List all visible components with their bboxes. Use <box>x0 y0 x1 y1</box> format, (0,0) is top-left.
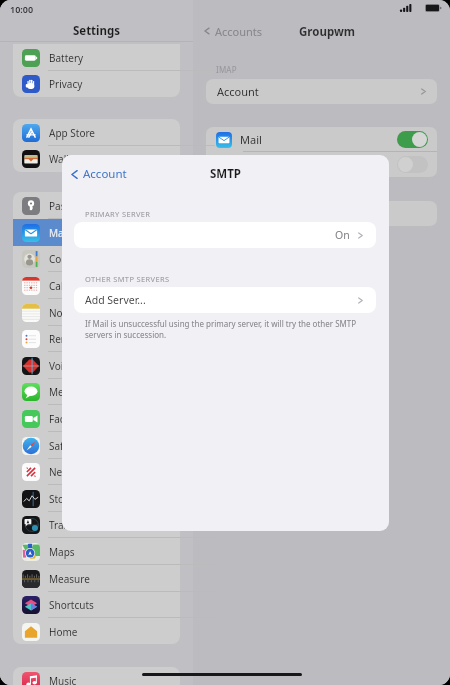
button[interactable]: Voice Memos <box>13 352 180 379</box>
staticText: Groupwm <box>299 24 355 40</box>
button[interactable]: Wallet <box>13 145 180 172</box>
button[interactable]: Account <box>68 165 127 183</box>
staticText: Reminders <box>49 332 100 346</box>
button[interactable]: Calendar <box>13 272 180 299</box>
button[interactable]: Account <box>206 79 437 104</box>
staticText: Mail <box>49 226 69 240</box>
staticText: Measure <box>49 572 90 586</box>
staticText: IMAP <box>216 64 237 75</box>
staticText: Wallet <box>49 152 79 166</box>
staticText: Add Server... <box>85 293 146 307</box>
staticText: Account <box>83 166 127 182</box>
button[interactable]: Mail <box>206 127 437 152</box>
staticText: Shortcuts <box>49 598 94 612</box>
staticText: OTHER SMTP SERVERS <box>85 274 170 284</box>
button[interactable]: Maps <box>13 538 180 565</box>
button[interactable]: Disabled <box>206 152 437 177</box>
button[interactable]: Translate <box>13 511 180 538</box>
staticText: Accounts <box>215 24 263 39</box>
staticText: Stocks <box>49 492 80 506</box>
button[interactable]: Reminders <box>13 325 180 352</box>
staticText: Voice Memos <box>49 359 112 373</box>
button[interactable]: Disabled <box>397 156 428 173</box>
staticText: Mail <box>240 132 262 147</box>
button[interactable]: Add Server... <box>74 287 376 313</box>
button[interactable]: FaceTime <box>13 405 180 432</box>
button[interactable]: Accounts <box>202 22 263 40</box>
staticText: Battery <box>49 51 84 65</box>
staticText: Music <box>49 674 77 685</box>
button[interactable]: Notes <box>13 299 180 326</box>
staticText: Safari <box>49 439 76 453</box>
staticText: PRIMARY SERVER <box>85 209 151 219</box>
button[interactable]: Battery <box>13 44 180 71</box>
staticText: Passwords <box>49 199 100 213</box>
button[interactable]: Measure <box>13 565 180 592</box>
staticText: Translate <box>49 518 93 532</box>
staticText: FaceTime <box>49 412 94 426</box>
button[interactable]: Safari <box>13 432 180 459</box>
staticText: Messages <box>49 385 96 399</box>
staticText: Home <box>49 625 78 639</box>
button[interactable]: On <box>74 222 376 248</box>
staticText: Account <box>217 84 259 99</box>
staticText: SMTP <box>62 166 389 182</box>
button[interactable]: Contacts <box>13 245 180 272</box>
button[interactable]: Passwords <box>13 192 180 219</box>
button[interactable]: Messages <box>13 378 180 405</box>
staticText: Contacts <box>49 252 90 266</box>
button[interactable]: Shortcuts <box>13 591 180 618</box>
button[interactable]: App Store <box>13 119 180 146</box>
button[interactable]: Privacy <box>13 70 180 97</box>
staticText: On <box>335 228 350 242</box>
button[interactable] <box>206 201 437 226</box>
staticText: News <box>49 465 75 479</box>
button[interactable]: News <box>13 458 180 485</box>
button[interactable]: Mail <box>13 219 180 246</box>
button[interactable]: Home <box>13 618 180 645</box>
staticText: 10:00 <box>10 3 34 15</box>
staticText: Calendar <box>49 279 92 293</box>
staticText: Settings <box>0 23 193 39</box>
button[interactable]: Music <box>13 667 180 685</box>
staticText: Privacy <box>49 77 83 91</box>
button[interactable]: Enabled <box>397 131 428 148</box>
staticText: Notes <box>49 306 77 320</box>
button[interactable]: Stocks <box>13 485 180 512</box>
staticText: App Store <box>49 126 96 140</box>
staticText: If Mail is unsuccessful using the primar… <box>85 318 373 340</box>
staticText: Maps <box>49 545 75 559</box>
